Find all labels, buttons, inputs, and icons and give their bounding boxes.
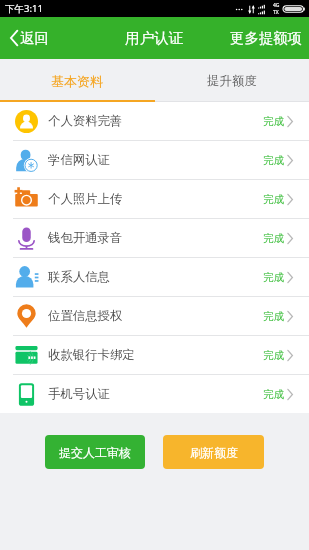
button[interactable]: 学信网认证 [0, 141, 309, 179]
button[interactable]: Back [0, 21, 59, 55]
button[interactable]: 更多提额项 [222, 21, 309, 55]
other: Back [10, 30, 18, 46]
staticText: 完成 [263, 271, 284, 284]
button[interactable]: 收款银行卡绑定 [0, 336, 309, 374]
staticText: 用户认证 [125, 29, 184, 47]
staticText: 完成 [263, 193, 284, 206]
staticText: 提交人工审核 [59, 445, 131, 460]
staticText: 完成 [263, 154, 284, 167]
staticText: TX [273, 9, 279, 16]
staticText: 下午3:11 [5, 2, 43, 15]
staticText: 刷新额度 [190, 445, 238, 460]
staticText: 基本资料 [51, 73, 103, 89]
staticText: 完成 [263, 310, 284, 323]
staticText: 提升额度 [207, 73, 257, 89]
button[interactable]: 刷新额度 [163, 435, 264, 469]
staticText: 钱包开通录音 [48, 230, 123, 246]
staticText: 联系人信息 [48, 269, 110, 285]
button[interactable]: 提升额度 [154, 59, 309, 102]
staticText: 位置信息授权 [48, 308, 123, 324]
staticText: 学信网认证 [48, 152, 110, 168]
staticText: 完成 [263, 388, 284, 401]
staticText: 返回 [20, 29, 49, 47]
button[interactable]: 位置信息授权 [0, 297, 309, 335]
staticText: 个人资料完善 [48, 113, 123, 129]
staticText: 个人照片上传 [48, 191, 123, 207]
button[interactable]: 提交人工审核 [45, 435, 145, 469]
staticText: 完成 [263, 232, 284, 245]
button[interactable]: 联系人信息 [0, 258, 309, 296]
staticText: 完成 [263, 115, 284, 128]
staticText: 4G [273, 2, 280, 9]
button[interactable]: 手机号认证 [0, 375, 309, 413]
button[interactable]: 钱包开通录音 [0, 219, 309, 257]
staticText: 完成 [263, 349, 284, 362]
button[interactable]: 基本资料 [0, 59, 154, 102]
staticText: 收款银行卡绑定 [48, 347, 135, 363]
button[interactable]: 个人资料完善 [0, 102, 309, 140]
staticText: 手机号认证 [48, 386, 110, 402]
button[interactable]: 个人照片上传 [0, 180, 309, 218]
